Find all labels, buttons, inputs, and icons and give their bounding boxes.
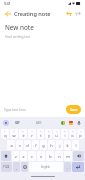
button[interactable]: Translate <box>68 120 74 126</box>
button[interactable]: a <box>7 140 15 150</box>
button[interactable]: d <box>24 140 31 150</box>
staticText: 4 <box>31 130 33 133</box>
button[interactable]: Back <box>3 9 12 18</box>
button[interactable]: 5 <box>37 129 44 139</box>
button[interactable]: m <box>64 151 72 161</box>
button[interactable]: English <box>29 162 63 172</box>
staticText: ABC <box>36 121 42 125</box>
button[interactable]: 3 <box>19 129 27 139</box>
staticText: a <box>10 143 13 148</box>
button[interactable]: Redo <box>73 9 82 18</box>
staticText: g <box>42 143 45 148</box>
button[interactable]: Voice input <box>76 120 82 126</box>
button[interactable]: s <box>16 140 23 150</box>
staticText: d <box>26 143 29 148</box>
staticText: New note <box>5 23 34 32</box>
button[interactable]: Undo <box>64 9 73 18</box>
button[interactable]: Theme <box>60 120 66 126</box>
button[interactable]: 8 <box>61 129 68 139</box>
staticText: x <box>22 154 25 159</box>
staticText: , <box>16 165 18 170</box>
staticText: l <box>75 143 77 148</box>
button[interactable]: Emoji <box>21 162 28 172</box>
staticText: k <box>66 143 69 148</box>
staticText: v <box>40 154 42 159</box>
staticText: n <box>58 154 61 159</box>
staticText: 5 <box>40 130 42 133</box>
staticText: ?123 <box>3 165 10 169</box>
staticText: 9 <box>72 130 74 133</box>
staticText: Type text here <box>4 107 27 111</box>
staticText: c <box>31 154 33 159</box>
button[interactable]: 2 <box>10 129 18 139</box>
button[interactable]: 1 <box>1 129 9 139</box>
button[interactable]: ABC <box>35 120 43 126</box>
staticText: z <box>15 154 17 159</box>
staticText: 8 <box>64 130 66 133</box>
button[interactable]: n <box>55 151 63 161</box>
staticText: j <box>59 143 61 148</box>
staticText: p <box>79 133 82 138</box>
staticText: English <box>41 165 51 169</box>
staticText: y <box>48 133 50 138</box>
button[interactable]: k <box>64 140 71 150</box>
button[interactable]: Save <box>66 105 81 114</box>
button[interactable]: 7 <box>53 129 60 139</box>
button[interactable]: f <box>32 140 39 150</box>
button[interactable]: Type text here <box>4 107 66 111</box>
staticText: h <box>50 143 53 148</box>
button[interactable]: . <box>64 162 71 172</box>
staticText: 6 <box>48 130 50 133</box>
staticText: o <box>71 133 74 138</box>
staticText: 1 <box>4 130 6 133</box>
button[interactable]: l <box>72 140 79 150</box>
staticText: 7 <box>56 130 58 133</box>
button[interactable]: Backspace <box>73 151 84 161</box>
button[interactable]: 0 <box>77 129 84 139</box>
staticText: q <box>4 133 7 138</box>
button[interactable]: h <box>48 140 55 150</box>
staticText: t <box>40 133 42 138</box>
staticText: r <box>31 133 33 138</box>
button[interactable]: b <box>46 151 54 161</box>
button[interactable]: GIF <box>14 120 21 126</box>
staticText: . <box>67 165 69 170</box>
button[interactable]: g <box>40 140 47 150</box>
button[interactable]: j <box>56 140 63 150</box>
staticText: 0 <box>80 130 82 133</box>
staticText: b <box>49 154 52 159</box>
staticText: w <box>12 133 16 138</box>
staticText: GIF <box>15 121 20 125</box>
button[interactable]: 4 <box>28 129 36 139</box>
button[interactable]: z <box>12 151 19 161</box>
button[interactable]: Shift <box>1 151 11 161</box>
button[interactable]: Keyboard menu <box>3 120 9 126</box>
staticText: 2 <box>13 130 15 133</box>
button[interactable]: c <box>28 151 36 161</box>
staticText: f <box>35 143 37 148</box>
button[interactable]: New note <box>0 20 85 101</box>
button[interactable]: 9 <box>69 129 76 139</box>
staticText: Start writing text <box>5 35 31 39</box>
button[interactable]: Enter <box>72 162 84 172</box>
button[interactable]: 6 <box>45 129 52 139</box>
staticText: Save <box>70 107 78 112</box>
staticText: i <box>64 133 66 138</box>
staticText: u <box>55 133 58 138</box>
button[interactable]: x <box>20 151 27 161</box>
button[interactable]: , <box>13 162 20 172</box>
staticText: m <box>66 154 70 159</box>
staticText: 9:41 <box>4 1 11 6</box>
staticText: Creating note <box>14 10 51 18</box>
staticText: 3 <box>22 130 24 133</box>
staticText: e <box>22 133 25 138</box>
button[interactable]: ?123 <box>1 162 12 172</box>
button[interactable]: v <box>37 151 45 161</box>
staticText: s <box>19 143 21 148</box>
